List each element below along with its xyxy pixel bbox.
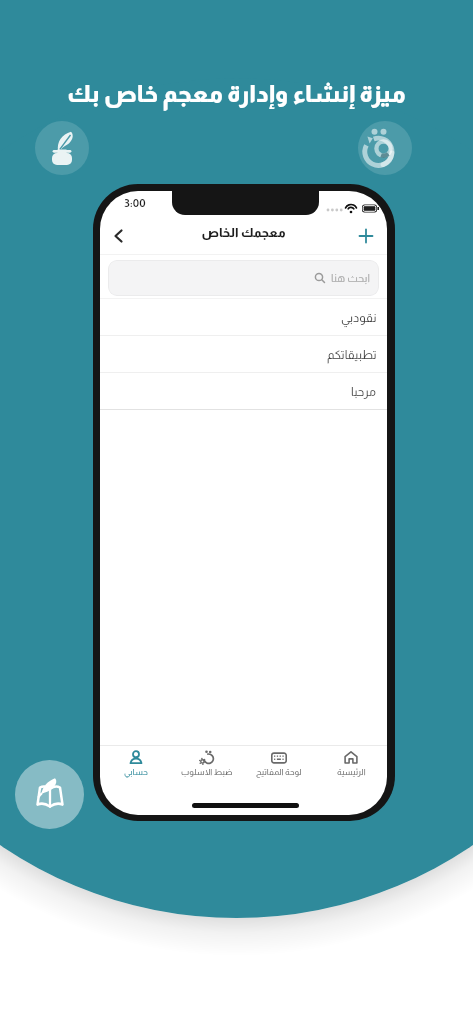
button[interactable] bbox=[358, 121, 412, 175]
button[interactable]: تطبيقاتكم bbox=[100, 336, 387, 372]
staticText: 3:00 bbox=[124, 197, 146, 210]
staticText: ميزة إنشاء وإدارة معجم خاص بك bbox=[0, 81, 473, 107]
button[interactable]: الرئيسية bbox=[315, 746, 387, 776]
staticText: الرئيسية bbox=[337, 767, 366, 776]
button[interactable]: حسابي bbox=[100, 746, 171, 776]
button[interactable]: ابحث هنا bbox=[108, 260, 379, 296]
button[interactable] bbox=[15, 760, 84, 829]
button[interactable] bbox=[353, 227, 379, 247]
staticText: تطبيقاتكم bbox=[327, 348, 377, 361]
staticText: ابحث هنا bbox=[331, 272, 370, 284]
button[interactable]: ضبط الاسلوب bbox=[171, 746, 243, 776]
button[interactable]: نقودبي bbox=[100, 299, 387, 335]
button[interactable] bbox=[35, 121, 89, 175]
button[interactable]: لوحة المفاتيح bbox=[243, 746, 315, 776]
staticText: حسابي bbox=[124, 767, 148, 776]
button[interactable]: مرحبا bbox=[100, 373, 387, 409]
staticText: نقودبي bbox=[341, 311, 377, 324]
staticText: لوحة المفاتيح bbox=[256, 767, 302, 776]
staticText: مرحبا bbox=[351, 385, 377, 398]
staticText: ضبط الاسلوب bbox=[181, 767, 233, 776]
staticText: معجمك الخاص bbox=[100, 226, 387, 240]
button[interactable] bbox=[106, 227, 132, 247]
